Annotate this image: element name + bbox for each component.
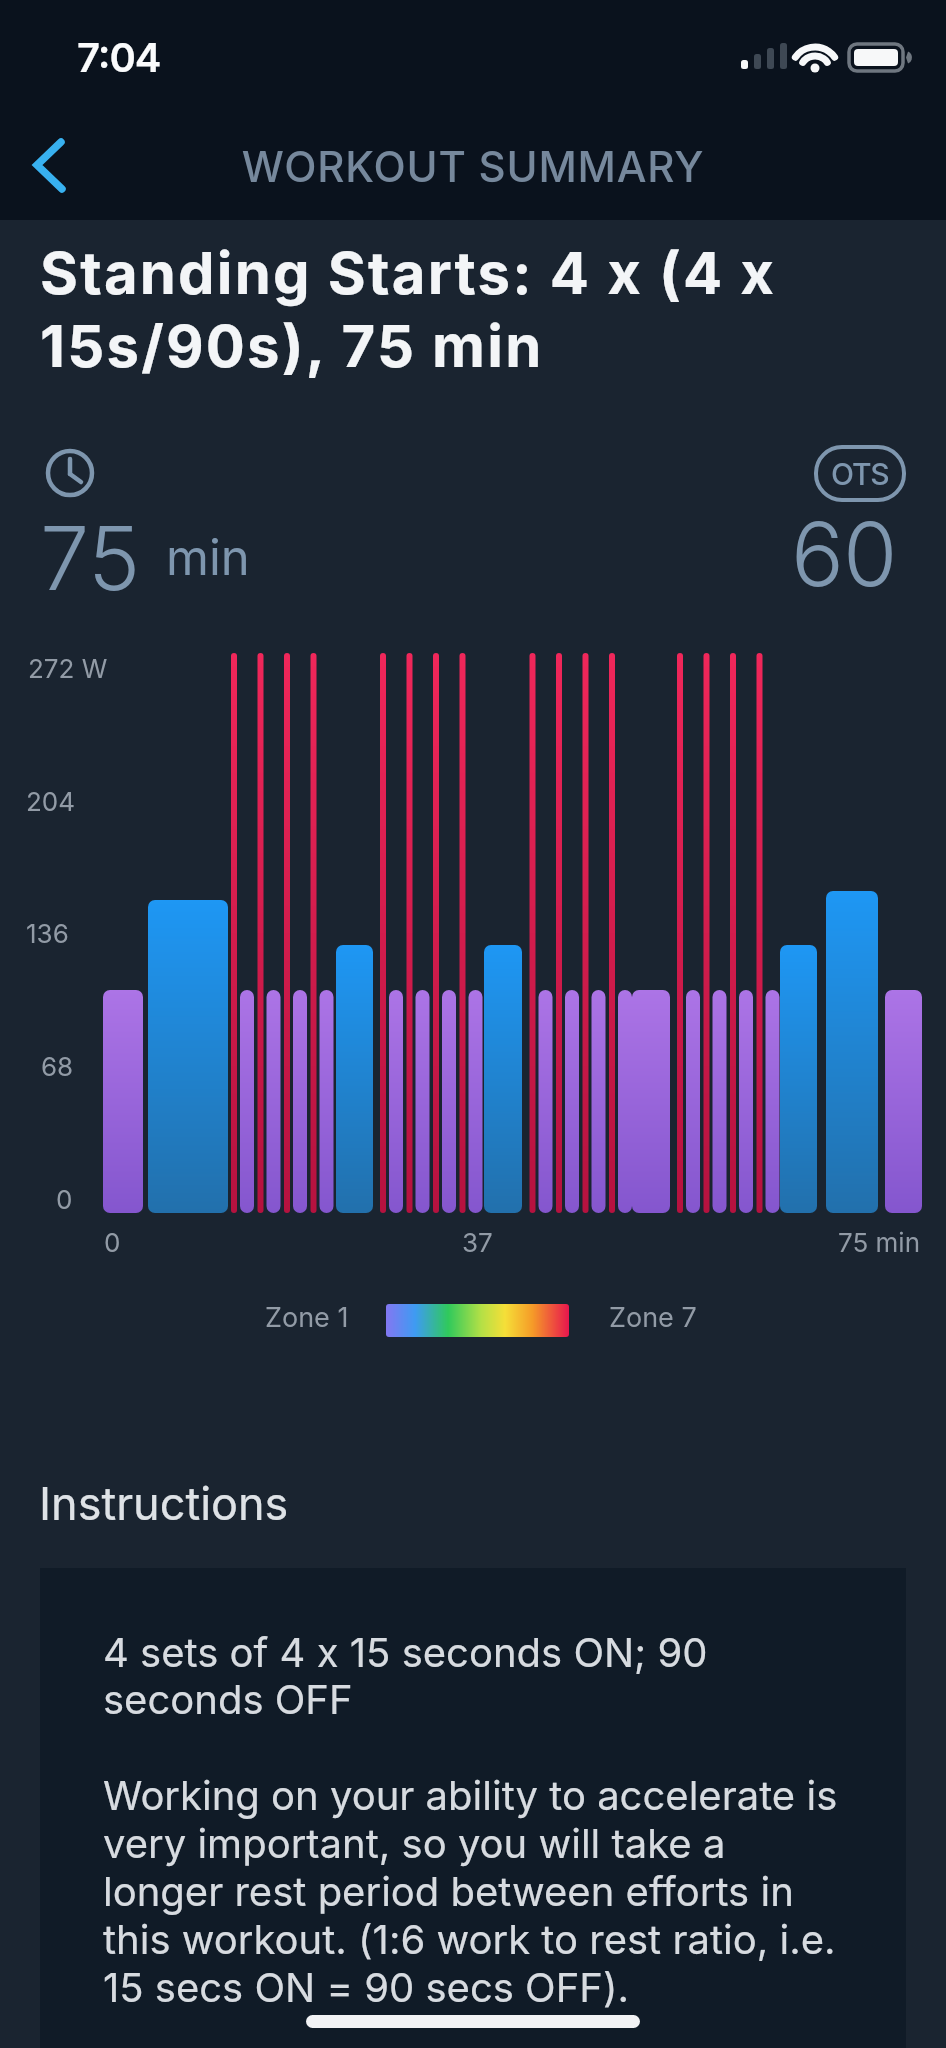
button[interactable] [18,122,82,208]
staticText: Zone 1 [265,1301,349,1334]
staticText: min [166,528,250,587]
button[interactable]: OTS [814,445,906,502]
staticText: OTS [831,456,889,492]
staticText: 37 [462,1227,493,1258]
staticText: 204 [26,786,76,817]
staticText: 60 [791,501,897,607]
staticText: 0 [104,1227,121,1258]
staticText: WORKOUT SUMMARY [0,141,946,192]
staticText: 272 W [28,653,108,684]
staticText: 75 [40,505,140,611]
staticText: Instructions [39,1476,289,1530]
staticText: 136 [26,918,69,949]
staticText: 7:04 [77,33,161,81]
staticText: Standing Starts: 4 x (4 x 15s/90s), 75 m… [40,238,777,381]
staticText: Zone 7 [609,1301,697,1334]
staticText: 4 sets of 4 x 15 seconds ON; 90 seconds … [103,1628,838,2012]
staticText: 75 min [838,1227,921,1258]
staticText: 68 [41,1051,74,1082]
staticText: 0 [56,1184,73,1215]
